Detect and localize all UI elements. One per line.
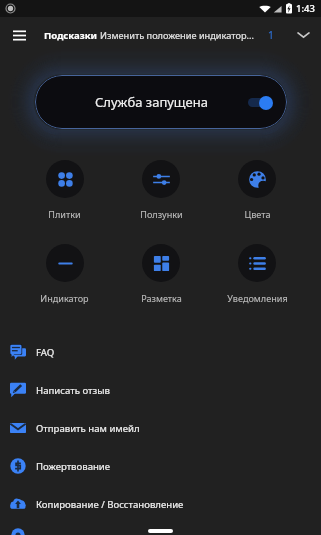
staticText: Изменить положение индикатор... bbox=[100, 29, 254, 42]
staticText: FAQ bbox=[36, 346, 55, 359]
button[interactable]: Ползунки bbox=[113, 160, 209, 220]
button[interactable]: Копирование / Восстановление bbox=[0, 485, 321, 523]
button[interactable]: Уведомления bbox=[209, 244, 305, 304]
staticText: Ползунки bbox=[140, 208, 183, 220]
staticText: Разметка bbox=[141, 292, 182, 304]
staticText: Уведомления bbox=[227, 292, 288, 304]
button[interactable]: Написать отзыв bbox=[0, 371, 321, 409]
staticText: Пожертвование bbox=[36, 460, 111, 473]
button[interactable]: Плитки bbox=[16, 160, 113, 220]
staticText: 1:43 bbox=[296, 2, 315, 15]
staticText: Плитки bbox=[48, 208, 81, 220]
staticText: Отправить нам имейл bbox=[36, 422, 140, 435]
button[interactable]: FAQ bbox=[0, 333, 321, 371]
button[interactable]: Разметка bbox=[113, 244, 209, 304]
button[interactable]: Пожертвование bbox=[0, 447, 321, 485]
staticText: Индикатор bbox=[40, 292, 89, 304]
button[interactable]: Menu bbox=[0, 17, 38, 53]
button[interactable]: Служба запущена bbox=[35, 75, 287, 129]
staticText: Написать отзыв bbox=[36, 384, 110, 397]
staticText: 1 bbox=[268, 28, 274, 42]
staticText: Цвета bbox=[244, 208, 271, 220]
button[interactable]: Цвета bbox=[209, 160, 305, 220]
button[interactable]: Отправить нам имейл bbox=[0, 409, 321, 447]
button[interactable]: Индикатор bbox=[16, 244, 113, 304]
button[interactable]: Expand bbox=[285, 17, 321, 53]
staticText: Подсказки bbox=[44, 29, 98, 42]
staticText: Копирование / Восстановление bbox=[36, 498, 184, 511]
staticText: Служба запущена bbox=[95, 93, 208, 111]
